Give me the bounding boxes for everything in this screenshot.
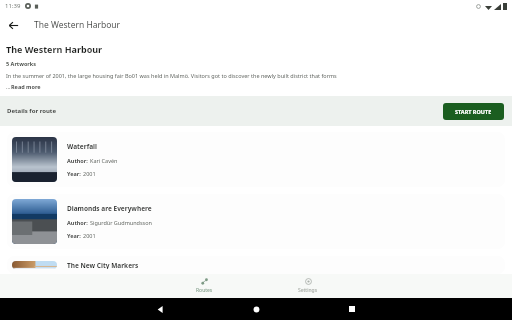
button[interactable]: The New City Markers [7, 256, 505, 274]
staticText: 2001 [83, 232, 96, 239]
staticText: In the summer of 2001, the large housing… [6, 72, 337, 79]
staticText: START ROUTE [455, 108, 492, 115]
staticText: 2001 [83, 170, 96, 177]
staticText: 11:39 [5, 2, 21, 10]
staticText: Year: [67, 170, 83, 177]
button[interactable]: Back [0, 12, 26, 38]
staticText: Settings [298, 287, 318, 294]
staticText: Kari Cavén [90, 157, 118, 164]
staticText: Sigurdür Gudmundsson [90, 219, 152, 226]
button[interactable]: Diamonds are Everywhere [7, 194, 505, 249]
staticText: 5 Artworks [6, 60, 37, 67]
button[interactable]: Settings [280, 274, 336, 298]
staticText: The New City Markers [67, 261, 139, 269]
button[interactable]: ... [6, 83, 41, 90]
staticText: Read more [11, 83, 41, 90]
staticText: Author: [67, 157, 90, 164]
staticText: Author: [67, 219, 90, 226]
staticText: Details for route [7, 107, 57, 115]
staticText: Diamonds are Everywhere [67, 204, 152, 213]
button[interactable]: Routes [176, 274, 232, 298]
button[interactable]: Recents [320, 298, 384, 320]
staticText: The Western Harbour [34, 19, 121, 31]
staticText: Waterfall [67, 142, 97, 151]
staticText: Routes [196, 287, 213, 294]
button[interactable]: Back [128, 298, 192, 320]
staticText: ... [6, 83, 11, 90]
button[interactable]: Waterfall [7, 132, 505, 187]
button[interactable]: START ROUTE [443, 103, 504, 120]
staticText: Year: [67, 232, 83, 239]
staticText: The Western Harbour [6, 43, 103, 55]
button[interactable]: Home [224, 298, 288, 320]
